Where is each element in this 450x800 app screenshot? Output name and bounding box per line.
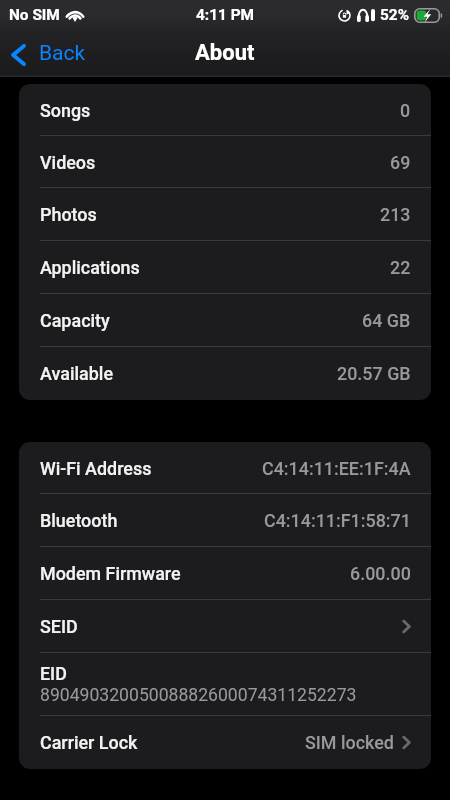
button[interactable]: Wi-Fi Address [19,442,431,494]
staticText: C4:14:11:EE:1F:4A [262,458,411,479]
staticText: 89049032005008882600074311252273 [40,685,357,706]
staticText: 0 [400,100,411,121]
staticText: 20.57 GB [337,363,411,384]
button[interactable]: Modem Firmware [19,547,431,600]
staticText: About [195,40,255,66]
staticText: SEID [40,616,78,637]
staticText: No SIM [9,6,60,24]
staticText: 64 GB [362,310,411,331]
staticText: Available [40,363,113,384]
staticText: SIM locked [305,732,394,753]
staticText: Videos [40,152,96,173]
staticText: C4:14:11:F1:58:71 [264,510,411,531]
staticText: Back [39,41,86,66]
staticText: Capacity [40,310,110,331]
button[interactable]: EID [19,653,431,716]
staticText: EID [40,663,67,684]
button[interactable]: Back [0,37,100,72]
staticText: Wi-Fi Address [40,458,152,479]
staticText: Applications [40,257,140,278]
staticText: Songs [40,100,91,121]
staticText: Carrier Lock [40,732,138,753]
button[interactable]: Bluetooth [19,494,431,547]
staticText: Photos [40,204,97,225]
button[interactable]: Capacity [19,294,431,347]
staticText: Bluetooth [40,510,118,531]
button[interactable]: Videos [19,136,431,188]
button[interactable]: Photos [19,188,431,241]
button[interactable]: Available [19,347,431,400]
staticText: 52% [380,6,410,24]
staticText: 6.00.00 [350,563,411,584]
staticText: 213 [380,204,411,225]
staticText: 22 [390,257,411,278]
button[interactable]: Carrier Lock [19,716,431,769]
button[interactable]: SEID [19,600,431,653]
staticText: 4:11 PM [196,6,255,24]
button[interactable]: Songs [19,84,431,136]
staticText: 69 [390,152,411,173]
staticText: Modem Firmware [40,563,181,584]
button[interactable]: Applications [19,241,431,294]
